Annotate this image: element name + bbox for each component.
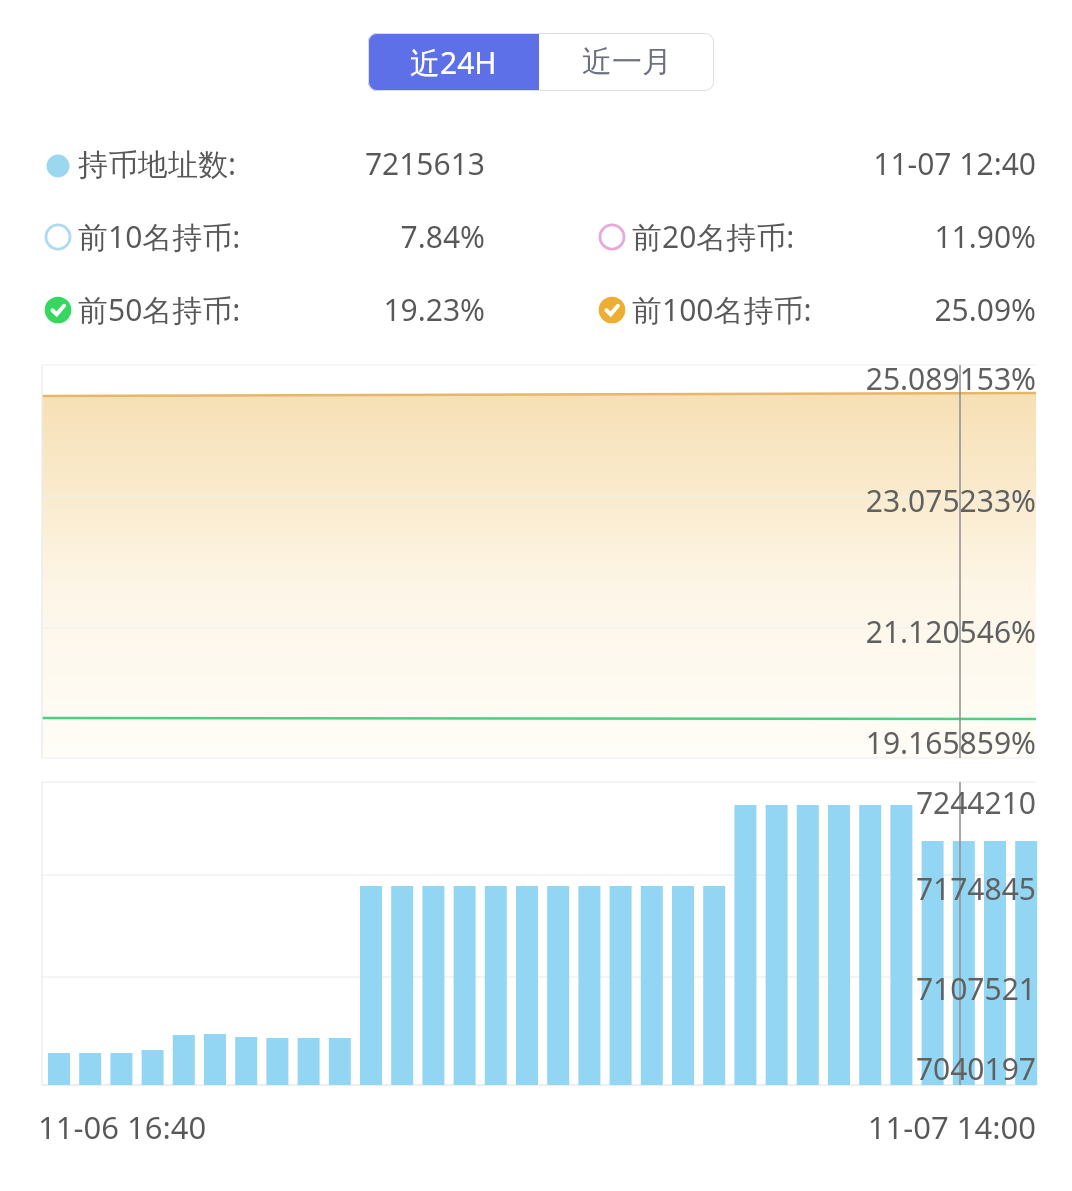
- staticText: 11-07 14:00: [690, 1106, 1036, 1148]
- button[interactable]: 近一月: [539, 33, 714, 91]
- staticText: 7107521: [640, 968, 1036, 1009]
- staticText: 19.165859%: [640, 722, 1036, 763]
- staticText: 11.90%: [836, 216, 1036, 257]
- staticText: 21.120546%: [640, 611, 1036, 652]
- staticText: 7215613: [285, 143, 485, 184]
- staticText: 19.23%: [285, 289, 485, 330]
- staticText: 23.075233%: [640, 480, 1036, 521]
- staticText: 25.089153%: [640, 358, 1036, 399]
- staticText: 持币地址数:: [78, 143, 237, 184]
- button[interactable]: Top 100 holders: [598, 296, 626, 324]
- staticText: 11-07 12:40: [740, 143, 1036, 184]
- staticText: 7040197: [640, 1048, 1036, 1089]
- staticText: 25.09%: [836, 289, 1036, 330]
- button[interactable]: Top 20 holders: [598, 223, 626, 251]
- staticText: 前100名持币:: [632, 289, 812, 330]
- staticText: 11-06 16:40: [38, 1106, 207, 1148]
- staticText: 前50名持币:: [78, 289, 241, 330]
- staticText: 近一月: [582, 43, 672, 81]
- button[interactable]: 近24H: [368, 33, 539, 91]
- button[interactable]: Holder addresses: [44, 152, 72, 180]
- button[interactable]: Top 10 holders: [44, 223, 72, 251]
- staticText: 近24H: [410, 42, 497, 83]
- staticText: 前20名持币:: [632, 216, 795, 257]
- button[interactable]: Top 50 holders: [44, 296, 72, 324]
- staticText: 7174845: [640, 868, 1036, 909]
- staticText: 7.84%: [285, 216, 485, 257]
- staticText: 前10名持币:: [78, 216, 241, 257]
- staticText: 7244210: [640, 782, 1036, 823]
